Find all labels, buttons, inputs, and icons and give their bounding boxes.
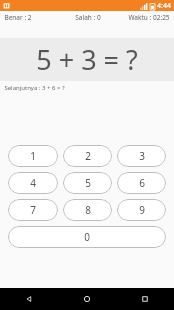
- button[interactable]: 6: [117, 172, 166, 194]
- staticText: 4: [30, 176, 36, 190]
- staticText: 2: [85, 149, 91, 163]
- staticText: 9: [139, 203, 145, 217]
- button[interactable]: 0: [8, 226, 166, 248]
- staticText: 1: [30, 149, 36, 163]
- staticText: 6: [139, 176, 145, 190]
- button[interactable]: 2: [63, 145, 112, 167]
- button[interactable]: 1: [8, 145, 58, 167]
- staticText: 4:44: [157, 1, 171, 11]
- button[interactable]: 8: [63, 199, 112, 221]
- button[interactable]: 5: [63, 172, 112, 194]
- staticText: 5 + 3 = ?: [36, 41, 138, 78]
- staticText: 5: [85, 176, 91, 190]
- staticText: 3: [139, 149, 145, 163]
- staticText: Salah : 0: [75, 13, 101, 22]
- button[interactable]: 7: [8, 199, 58, 221]
- button[interactable]: Recent apps: [116, 288, 174, 310]
- staticText: 0: [84, 230, 90, 244]
- button[interactable]: Back: [0, 288, 58, 310]
- staticText: 7: [30, 203, 36, 217]
- button[interactable]: 4: [8, 172, 58, 194]
- staticText: Benar : 2: [4, 13, 32, 22]
- button[interactable]: 3: [117, 145, 166, 167]
- staticText: Waktu : 02:25: [128, 13, 170, 22]
- button[interactable]: Home: [58, 288, 116, 310]
- staticText: Selanjutnya : 3 + 6 = ?: [4, 84, 65, 92]
- staticText: 8: [85, 203, 91, 217]
- button[interactable]: 9: [117, 199, 166, 221]
